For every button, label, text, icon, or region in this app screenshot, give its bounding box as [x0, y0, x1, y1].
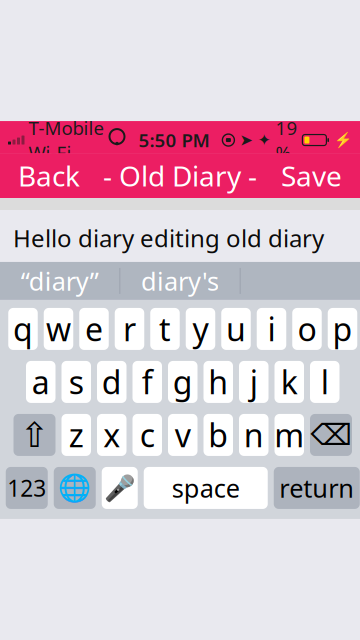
button[interactable]: e [79, 308, 109, 350]
staticText: ✦ [257, 131, 270, 149]
button[interactable]: return [274, 467, 360, 509]
staticText: d [102, 361, 122, 403]
staticText: f [142, 361, 153, 403]
button[interactable]: b [203, 414, 233, 456]
staticText: 🌐 [58, 473, 91, 503]
staticText: o [297, 308, 316, 350]
button[interactable]: u [221, 308, 251, 350]
staticText: ⌫ [310, 418, 351, 452]
staticText: T-Mobile Wi-Fi [28, 115, 104, 165]
staticText: ⇧ [20, 415, 49, 455]
staticText: y [192, 308, 208, 350]
staticText: space [172, 471, 240, 505]
button[interactable]: 123 [6, 467, 48, 509]
staticText: ⚡ [334, 132, 352, 148]
button[interactable]: r [115, 308, 144, 350]
staticText: a [32, 361, 50, 403]
button[interactable]: g [168, 361, 197, 403]
staticText: q [13, 308, 33, 350]
staticText: j [250, 361, 258, 403]
staticText: 5:50 PM [138, 128, 209, 152]
staticText: Hello diary editing old diary [13, 222, 324, 254]
staticText: p [332, 308, 352, 350]
staticText: n [244, 414, 264, 456]
button[interactable]: v [168, 414, 197, 456]
button[interactable]: diary's [120, 262, 240, 300]
button[interactable]: Next keyboard [54, 467, 96, 509]
staticText: v [175, 414, 191, 456]
button[interactable]: f [132, 361, 162, 403]
button[interactable]: l [310, 361, 339, 403]
button[interactable]: j [239, 361, 268, 403]
button[interactable]: s [61, 361, 91, 403]
button[interactable]: o [292, 308, 322, 350]
staticText: k [281, 361, 298, 403]
button[interactable]: z [61, 414, 91, 456]
button[interactable]: Dictation [102, 467, 138, 509]
button[interactable]: “diary” [0, 262, 119, 300]
staticText: z [69, 414, 84, 456]
staticText: ➤ [239, 131, 252, 149]
staticText: 19% [275, 115, 297, 165]
button[interactable]: Delete [310, 414, 352, 456]
button[interactable]: c [132, 414, 162, 456]
staticText: l [321, 361, 329, 403]
button[interactable]: i [257, 308, 286, 350]
staticText: s [69, 361, 84, 403]
button[interactable]: Save [271, 149, 352, 202]
button[interactable]: w [44, 308, 73, 350]
staticText: 🎤 [104, 473, 136, 502]
button[interactable]: space [144, 467, 268, 509]
staticText: e [85, 308, 103, 350]
staticText: r [123, 308, 136, 350]
button[interactable]: k [274, 361, 304, 403]
button[interactable]: d [97, 361, 126, 403]
staticText: w [46, 308, 71, 350]
button[interactable]: Back [8, 149, 90, 202]
staticText: diary's [141, 264, 219, 298]
staticText: g [173, 361, 193, 403]
button[interactable]: h [203, 361, 233, 403]
button[interactable]: m [274, 414, 304, 456]
staticText: c [140, 414, 155, 456]
button[interactable]: q [8, 308, 38, 350]
staticText: m [274, 414, 304, 456]
button[interactable]: t [150, 308, 180, 350]
button[interactable]: Shift [13, 414, 55, 456]
staticText: u [226, 308, 246, 350]
staticText: x [103, 414, 120, 456]
staticText: h [208, 361, 228, 403]
staticText: b [208, 414, 228, 456]
staticText: - Old Diary - [103, 157, 257, 194]
button[interactable]: n [239, 414, 268, 456]
staticText: return [279, 471, 354, 505]
button[interactable]: x [97, 414, 126, 456]
button[interactable]: a [26, 361, 55, 403]
staticText: Back [18, 157, 80, 194]
staticText: t [159, 308, 171, 350]
staticText: 123 [7, 473, 46, 503]
staticText: i [267, 308, 275, 350]
staticText: Save [281, 157, 342, 194]
button[interactable]: y [186, 308, 215, 350]
button[interactable]: p [328, 308, 357, 350]
staticText: “diary” [21, 264, 99, 298]
